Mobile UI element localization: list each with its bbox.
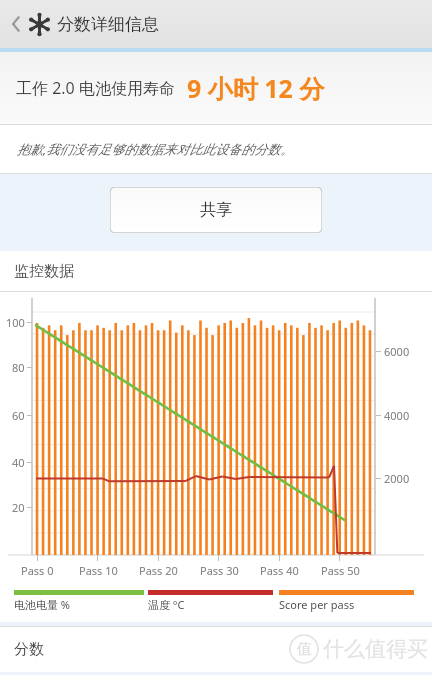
staticText: 温度 °C [148, 597, 185, 612]
staticText: 6000 [384, 344, 410, 359]
staticText: 4000 [384, 408, 410, 423]
staticText: 20 [12, 500, 25, 515]
staticText: Pass 10 [79, 563, 118, 578]
staticText: 100 [6, 315, 25, 330]
staticText: 电池电量 % [14, 597, 71, 612]
staticText: Pass 20 [139, 563, 178, 578]
staticText: 40 [12, 455, 25, 470]
staticText: 监控数据 [14, 262, 74, 281]
staticText: 共享 [200, 200, 232, 220]
staticText: 抱歉,我们没有足够的数据来对比此设备的分数。 [17, 140, 294, 158]
staticText: 值 [297, 640, 312, 659]
staticText: 分数详细信息 [57, 14, 159, 35]
button[interactable]: Back [5, 2, 27, 46]
staticText: 80 [12, 360, 25, 375]
staticText: Score per pass [279, 597, 355, 612]
staticText: 9 小时 12 分 [187, 71, 325, 105]
staticText: Pass 50 [321, 563, 360, 578]
staticText: 分数 [14, 640, 44, 659]
staticText: 60 [12, 408, 25, 423]
staticText: Pass 0 [21, 563, 54, 578]
staticText: 2000 [384, 471, 410, 486]
staticText: Pass 30 [200, 563, 239, 578]
staticText: Pass 40 [260, 563, 299, 578]
staticText: 什么值得买 [323, 636, 428, 662]
button[interactable]: 共享 [110, 187, 322, 233]
staticText: 工作 2.0 电池使用寿命 [16, 77, 175, 99]
